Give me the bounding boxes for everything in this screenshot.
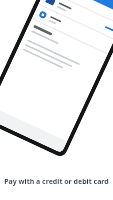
button[interactable]: Selected: [32, 4, 113, 53]
button[interactable]: Back: [53, 0, 113, 7]
button[interactable]: [39, 0, 113, 39]
other: Selected: [38, 10, 47, 19]
staticText: Pay with a credit or debit card: [0, 177, 113, 187]
button[interactable]: [81, 30, 109, 49]
button[interactable]: [50, 0, 113, 16]
